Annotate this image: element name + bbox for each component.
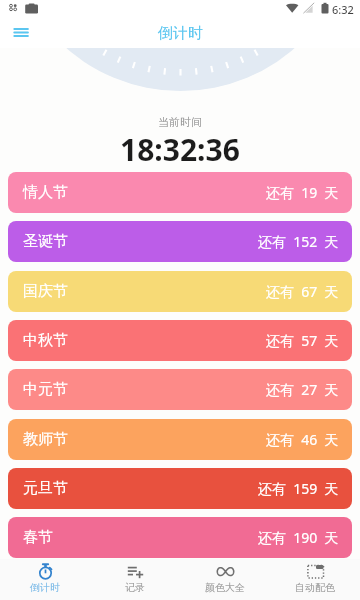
staticText: 记录: [125, 581, 145, 594]
button[interactable]: 中元节: [8, 369, 352, 410]
staticText: 中元节: [23, 380, 68, 399]
staticText: 还有 67 天: [266, 282, 339, 301]
staticText: 教师节: [23, 430, 68, 449]
staticText: 还有 27 天: [266, 380, 339, 399]
staticText: 自动配色: [295, 581, 335, 594]
button[interactable]: 颜色大全: [180, 559, 270, 600]
button[interactable]: 记录: [90, 559, 180, 600]
button[interactable]: 春节: [8, 517, 352, 558]
button[interactable]: 圣诞节: [8, 221, 352, 262]
staticText: 倒计时: [158, 24, 203, 43]
staticText: 春节: [23, 528, 53, 547]
button[interactable]: 情人节: [8, 172, 352, 213]
staticText: 18:32:36: [120, 129, 240, 170]
button[interactable]: 元旦节: [8, 468, 352, 509]
button[interactable]: Menu: [10, 21, 34, 45]
staticText: 还有 190 天: [258, 528, 339, 547]
staticText: 元旦节: [23, 479, 68, 498]
button[interactable]: 倒计时: [0, 559, 90, 600]
button[interactable]: 中秋节: [8, 320, 352, 361]
staticText: 国庆节: [23, 282, 68, 301]
staticText: 还有 159 天: [258, 479, 339, 498]
staticText: 情人节: [23, 183, 68, 202]
staticText: 圣诞节: [23, 232, 68, 251]
staticText: 还有 46 天: [266, 430, 339, 449]
staticText: 当前时间: [158, 115, 202, 129]
staticText: 还有 152 天: [258, 232, 339, 251]
button[interactable]: 教师节: [8, 419, 352, 460]
staticText: 颜色大全: [205, 581, 245, 594]
staticText: 倒计时: [30, 581, 60, 594]
staticText: 还有 19 天: [266, 183, 339, 202]
button[interactable]: 自动配色: [270, 559, 360, 600]
staticText: 中秋节: [23, 331, 68, 350]
button[interactable]: 国庆节: [8, 271, 352, 312]
staticText: 还有 57 天: [266, 331, 339, 350]
staticText: 6:32: [332, 2, 354, 17]
